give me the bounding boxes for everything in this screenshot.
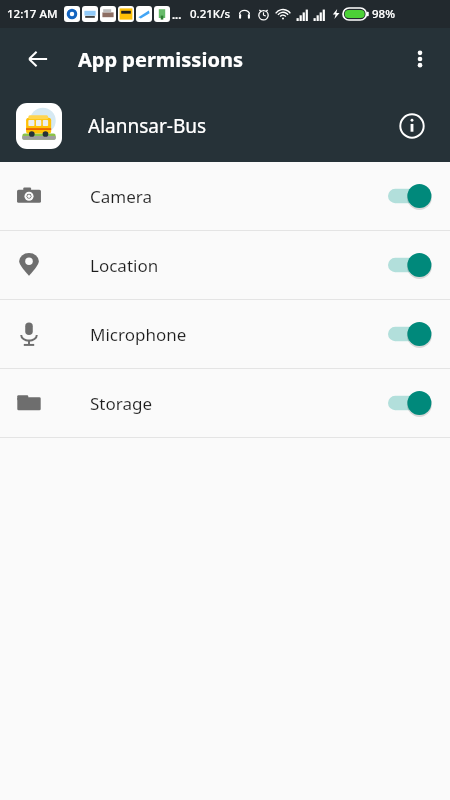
staticText: 0.21K/s xyxy=(190,6,231,22)
button[interactable]: Alannsar-Bus xyxy=(0,90,450,162)
button[interactable]: Storage xyxy=(0,369,450,437)
staticText: 12:17 AM xyxy=(7,6,58,22)
button[interactable]: Toggle permission xyxy=(388,388,434,418)
button[interactable]: App info xyxy=(390,104,434,148)
staticText: 98% xyxy=(372,6,395,22)
button[interactable]: Location xyxy=(0,231,450,299)
staticText: ... xyxy=(172,7,182,22)
button[interactable]: Back xyxy=(16,37,60,81)
staticText: Storage xyxy=(90,392,153,415)
staticText: Alannsar-Bus xyxy=(88,113,207,139)
button[interactable]: Microphone xyxy=(0,300,450,368)
button[interactable]: Camera xyxy=(0,162,450,230)
button[interactable]: Toggle permission xyxy=(388,319,434,349)
button[interactable]: More options xyxy=(398,37,442,81)
button[interactable]: Toggle permission xyxy=(388,250,434,280)
staticText: Location xyxy=(90,254,159,277)
button[interactable]: Toggle permission xyxy=(388,181,434,211)
staticText: Camera xyxy=(90,185,152,208)
staticText: Microphone xyxy=(90,323,187,346)
staticText: App permissions xyxy=(78,46,243,73)
